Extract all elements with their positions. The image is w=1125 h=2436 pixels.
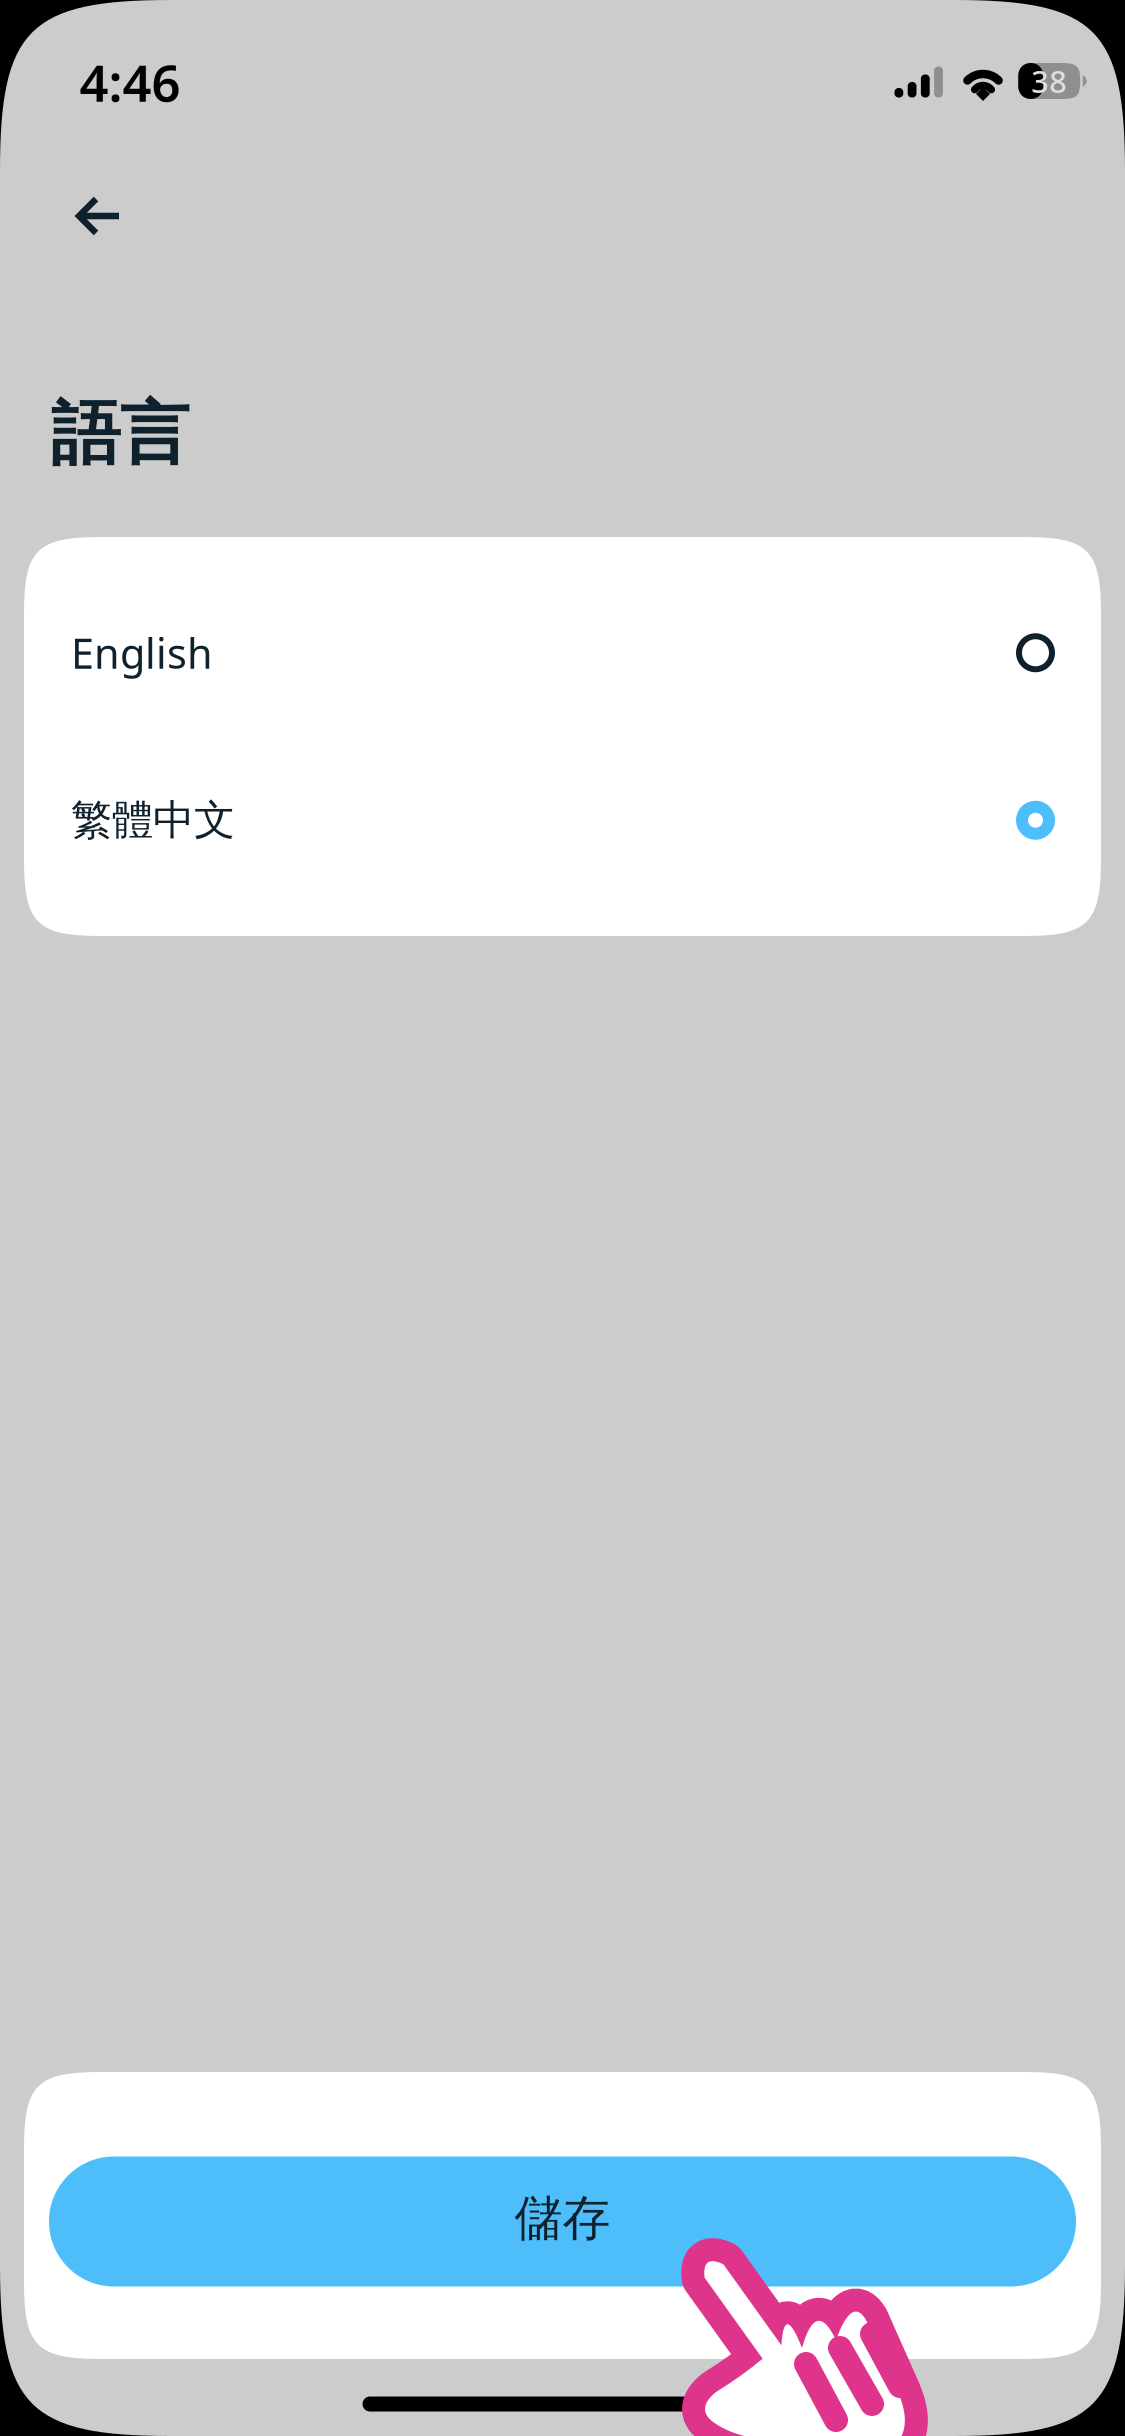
button[interactable]: English bbox=[24, 569, 1101, 736]
staticText: 儲存 bbox=[514, 2189, 610, 2248]
staticText: 38 bbox=[1031, 61, 1067, 101]
button[interactable]: 儲存 bbox=[49, 2156, 1076, 2286]
staticText: 4:46 bbox=[79, 48, 180, 116]
button[interactable]: 繁體中文 bbox=[24, 736, 1101, 904]
staticText: 語言 bbox=[51, 391, 189, 477]
staticText: English bbox=[71, 625, 213, 680]
staticText: 繁體中文 bbox=[71, 795, 235, 846]
button[interactable]: Back bbox=[33, 156, 165, 276]
